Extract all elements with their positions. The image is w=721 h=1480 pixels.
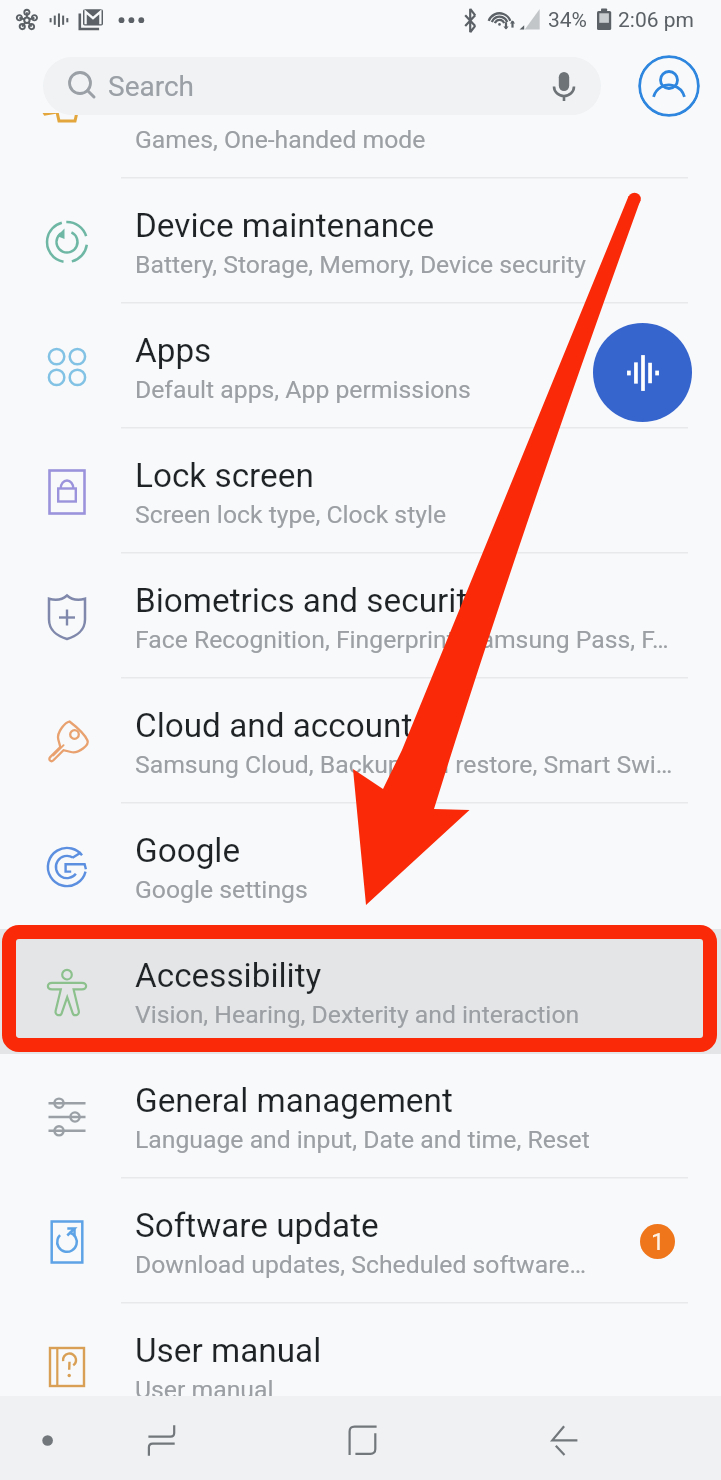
staticText: Screen lock type, Clock style bbox=[135, 500, 447, 529]
staticText: Accessibility bbox=[135, 956, 322, 995]
button[interactable]: Lock screen bbox=[0, 429, 721, 554]
staticText: 2:06 pm bbox=[618, 8, 694, 33]
staticText: Cloud and account bbox=[135, 706, 413, 745]
staticText: Download updates, Scheduled software… bbox=[135, 1250, 587, 1279]
button[interactable]: Search bbox=[43, 57, 601, 115]
staticText: Google bbox=[135, 831, 241, 870]
staticText: Language and input, Date and time, Reset bbox=[135, 1125, 590, 1154]
button[interactable]: Bixby voice bbox=[593, 323, 692, 422]
staticText: Software update bbox=[135, 1206, 379, 1245]
button[interactable]: Google bbox=[0, 804, 721, 929]
staticText: Advanced features bbox=[135, 113, 413, 120]
button[interactable]: Account bbox=[638, 55, 700, 117]
button[interactable]: Device maintenance bbox=[0, 179, 721, 304]
button[interactable]: Back bbox=[524, 1396, 604, 1480]
button[interactable]: Apps bbox=[0, 304, 721, 429]
staticText: Device maintenance bbox=[135, 206, 435, 245]
staticText: Samsung Cloud, Backup and restore, Smart… bbox=[135, 750, 673, 779]
staticText: Apps bbox=[135, 331, 212, 370]
staticText: Google settings bbox=[135, 875, 308, 904]
button[interactable]: Home bbox=[323, 1396, 403, 1480]
other: Voice search bbox=[549, 71, 579, 101]
staticText: Search bbox=[108, 70, 195, 103]
staticText: 1 bbox=[651, 1228, 665, 1256]
staticText: Games, One-handed mode bbox=[135, 125, 426, 154]
staticText: Biometrics and security bbox=[135, 581, 484, 620]
button[interactable]: Software update bbox=[0, 1179, 721, 1304]
button[interactable]: Cloud and account bbox=[0, 679, 721, 804]
staticText: User manual bbox=[135, 1331, 322, 1370]
button[interactable]: Notifications bbox=[8, 1396, 88, 1480]
staticText: User manual bbox=[135, 1375, 274, 1404]
staticText: Default apps, App permissions bbox=[135, 375, 471, 404]
staticText: Lock screen bbox=[135, 456, 314, 495]
staticText: General management bbox=[135, 1081, 453, 1120]
button[interactable]: Advanced features bbox=[0, 113, 721, 179]
staticText: Vision, Hearing, Dexterity and interacti… bbox=[135, 1000, 580, 1029]
staticText: Face Recognition, Fingerprint, Samsung P… bbox=[135, 625, 669, 654]
staticText: 34% bbox=[548, 8, 587, 33]
button[interactable]: User manual bbox=[0, 1304, 721, 1429]
button[interactable]: Biometrics and security bbox=[0, 554, 721, 679]
staticText: Battery, Storage, Memory, Device securit… bbox=[135, 250, 587, 279]
button[interactable]: Accessibility bbox=[0, 929, 721, 1054]
button[interactable]: Recent apps bbox=[121, 1396, 201, 1480]
button[interactable]: General management bbox=[0, 1054, 721, 1179]
